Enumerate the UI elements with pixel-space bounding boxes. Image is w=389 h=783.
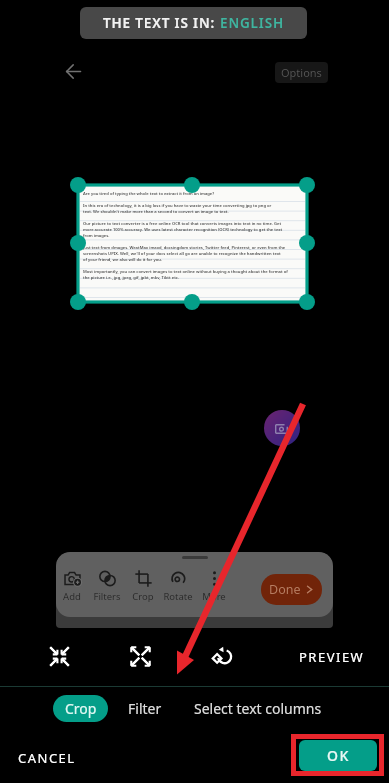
button[interactable]: More: [196, 566, 232, 606]
button[interactable]: Crop handle: [299, 294, 315, 310]
button[interactable]: Rotate: [160, 566, 196, 606]
staticText: Done: [269, 581, 301, 598]
button[interactable]: Crop: [53, 695, 108, 722]
button[interactable]: Options: [275, 62, 328, 83]
button[interactable]: Crop handle: [184, 294, 200, 310]
staticText: CANCEL: [18, 749, 76, 767]
staticText: Most importantly, you can convert images…: [83, 269, 288, 275]
button[interactable]: Rotate left: [202, 637, 240, 675]
button[interactable]: Crop handle: [70, 235, 86, 251]
button[interactable]: OK: [299, 740, 377, 771]
button[interactable]: Collapse: [40, 637, 78, 675]
staticText: the picture i.e., jpg, jpeg, gif, jpbt, …: [83, 275, 179, 281]
button[interactable]: Expand: [121, 637, 159, 675]
button[interactable]: Select text columns: [186, 695, 330, 722]
button[interactable]: Crop: [125, 566, 161, 606]
button[interactable]: CANCEL: [13, 744, 81, 772]
button[interactable]: Crop handle: [299, 177, 315, 193]
staticText: Our picture to text converter is a free …: [83, 221, 282, 227]
button[interactable]: Crop handle: [299, 235, 315, 251]
button[interactable]: Crop handle: [70, 177, 86, 193]
staticText: More: [202, 590, 226, 603]
staticText: Crop: [65, 699, 97, 718]
button[interactable]: THE TEXT IS IN:: [80, 7, 307, 39]
staticText: Options: [281, 65, 322, 80]
button[interactable]: Filters: [89, 566, 125, 606]
staticText: THE TEXT IS IN:: [103, 14, 220, 32]
button[interactable]: Google Lens: [264, 410, 300, 446]
button[interactable]: PREVIEW: [293, 643, 371, 671]
staticText: Just text from dmages. WeatMax imaxd, do…: [83, 245, 286, 251]
staticText: Filters: [93, 590, 121, 603]
staticText: Select text columns: [194, 699, 322, 718]
staticText: Are you tired of typing the whole text t…: [83, 191, 215, 197]
staticText: ENGLISH: [220, 14, 284, 32]
staticText: In this era of technology, it is a big l…: [83, 203, 272, 209]
button[interactable]: Back: [55, 53, 92, 90]
button[interactable]: Add: [54, 566, 90, 606]
button[interactable]: Crop handle: [184, 177, 200, 193]
staticText: PREVIEW: [299, 648, 365, 666]
staticText: screenshots UPIX. Well, we'll of your do…: [83, 251, 281, 257]
button[interactable]: Done: [261, 574, 322, 605]
button[interactable]: Filter: [120, 695, 170, 722]
button[interactable]: Crop handle: [70, 294, 86, 310]
staticText: from images.: [83, 233, 110, 239]
staticText: Crop: [132, 590, 154, 603]
staticText: of your friend, we also will do it for y…: [83, 257, 162, 263]
staticText: OK: [327, 746, 350, 765]
staticText: Filter: [128, 699, 162, 718]
staticText: Rotate: [163, 590, 193, 603]
staticText: more accurate 100% accuracy. We uses lat…: [83, 227, 283, 233]
staticText: Add: [63, 590, 81, 603]
staticText: text. We shouldn't make more than a seco…: [83, 209, 229, 215]
